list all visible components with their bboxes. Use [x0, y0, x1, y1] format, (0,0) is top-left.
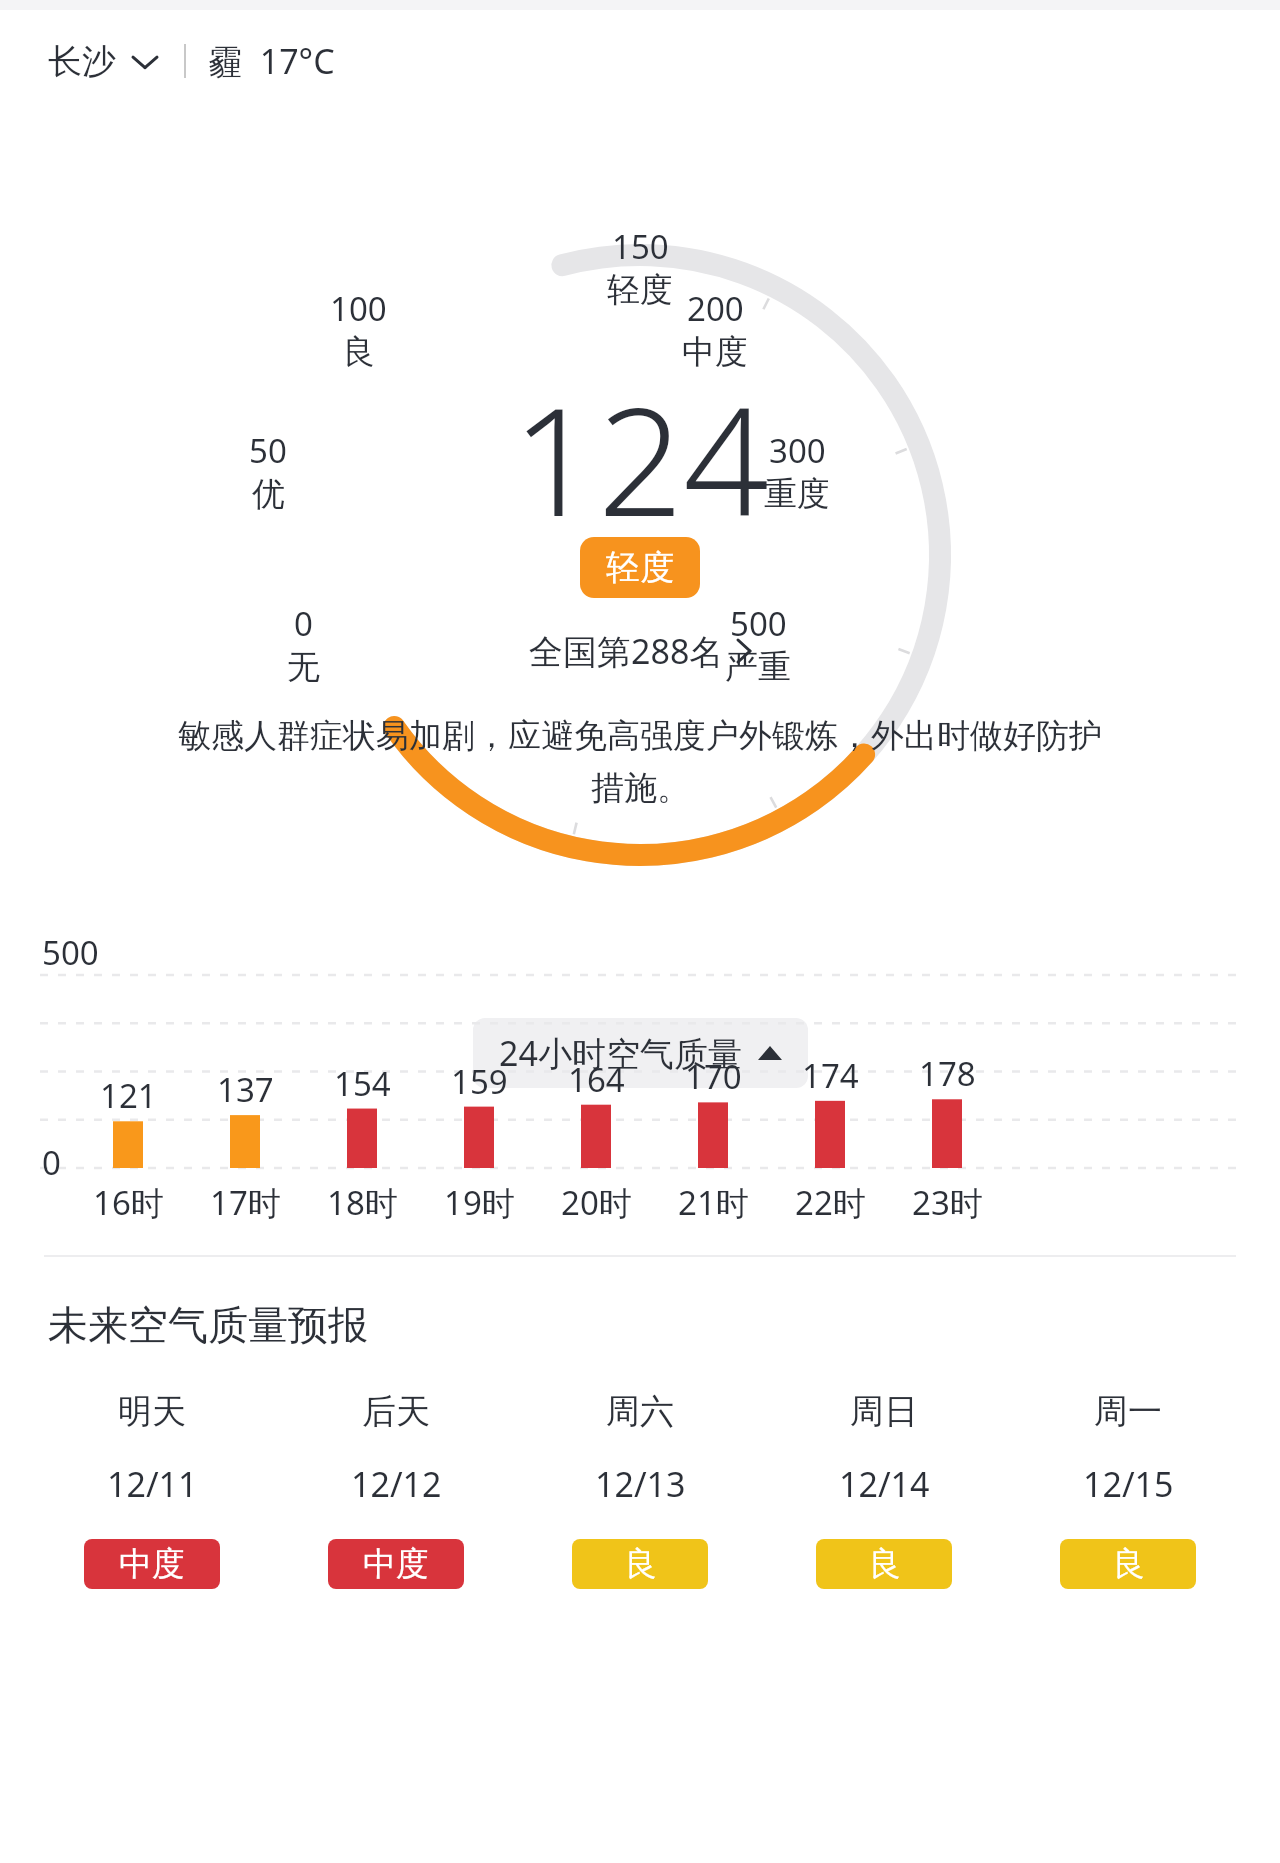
- staticText: 24小时空气质量: [499, 1030, 742, 1076]
- staticText: 23时: [912, 1180, 983, 1225]
- staticText: 200: [687, 286, 744, 331]
- staticText: 500: [42, 930, 99, 975]
- staticText: 150: [612, 224, 669, 269]
- button[interactable]: 全国第288名: [529, 628, 752, 674]
- staticText: 178: [919, 1051, 976, 1096]
- staticText: 20时: [561, 1180, 632, 1225]
- staticText: 周日: [850, 1390, 918, 1433]
- staticText: 周六: [606, 1390, 674, 1433]
- staticText: 300: [769, 428, 826, 473]
- button[interactable]: 周六: [518, 1390, 762, 1589]
- staticText: 12/11: [107, 1461, 198, 1507]
- staticText: 中度: [682, 331, 748, 373]
- staticText: 明天: [118, 1390, 186, 1433]
- staticText: 良: [868, 1543, 901, 1585]
- staticText: 124: [512, 356, 769, 560]
- staticText: 轻度: [606, 546, 674, 589]
- staticText: 12/14: [839, 1461, 930, 1507]
- staticText: 154: [334, 1061, 391, 1106]
- button[interactable]: 周日: [762, 1390, 1006, 1589]
- staticText: 50: [249, 428, 287, 473]
- button[interactable]: 周一: [1006, 1390, 1250, 1589]
- staticText: 中度: [119, 1543, 185, 1585]
- staticText: 良: [1112, 1543, 1145, 1585]
- button[interactable]: 轻度: [580, 537, 700, 598]
- staticText: 16时: [93, 1180, 164, 1225]
- staticText: 轻度: [607, 269, 673, 311]
- staticText: 无: [287, 646, 320, 688]
- staticText: 137: [217, 1067, 274, 1112]
- staticText: 170: [685, 1054, 742, 1099]
- staticText: 164: [568, 1057, 625, 1102]
- staticText: 19时: [444, 1180, 515, 1225]
- staticText: 12/12: [351, 1461, 442, 1507]
- staticText: 21时: [678, 1180, 749, 1225]
- button[interactable]: 长沙: [48, 40, 162, 83]
- staticText: 未来空气质量预报: [48, 1300, 368, 1350]
- button[interactable]: 24小时空气质量: [473, 1018, 808, 1088]
- staticText: 严重: [725, 646, 791, 688]
- staticText: 174: [802, 1053, 859, 1098]
- staticText: 500: [730, 601, 787, 646]
- staticText: 12/15: [1083, 1461, 1174, 1507]
- staticText: 良: [624, 1543, 657, 1585]
- staticText: 12/13: [595, 1461, 686, 1507]
- staticText: 后天: [362, 1390, 430, 1433]
- staticText: 0: [294, 601, 313, 646]
- staticText: 18时: [327, 1180, 398, 1225]
- button[interactable]: 明天: [30, 1390, 274, 1589]
- staticText: 重度: [764, 473, 830, 515]
- staticText: 敏感人群症状易加剧，应避免高强度户外锻炼，外出时做好防护: [178, 715, 1102, 757]
- button[interactable]: 后天: [274, 1390, 518, 1589]
- staticText: 159: [451, 1059, 508, 1104]
- staticText: 中度: [363, 1543, 429, 1585]
- staticText: 121: [100, 1073, 157, 1118]
- staticText: 17时: [210, 1180, 281, 1225]
- staticText: 全国第288名: [529, 628, 724, 674]
- staticText: 22时: [795, 1180, 866, 1225]
- staticText: 措施。: [591, 767, 690, 809]
- staticText: 0: [42, 1140, 61, 1185]
- staticText: 优: [252, 473, 285, 515]
- staticText: 长沙: [48, 40, 116, 83]
- staticText: 100: [330, 286, 387, 331]
- staticText: 周一: [1094, 1390, 1162, 1433]
- staticText: 良: [342, 331, 375, 373]
- staticText: 霾 17°C: [208, 38, 335, 84]
